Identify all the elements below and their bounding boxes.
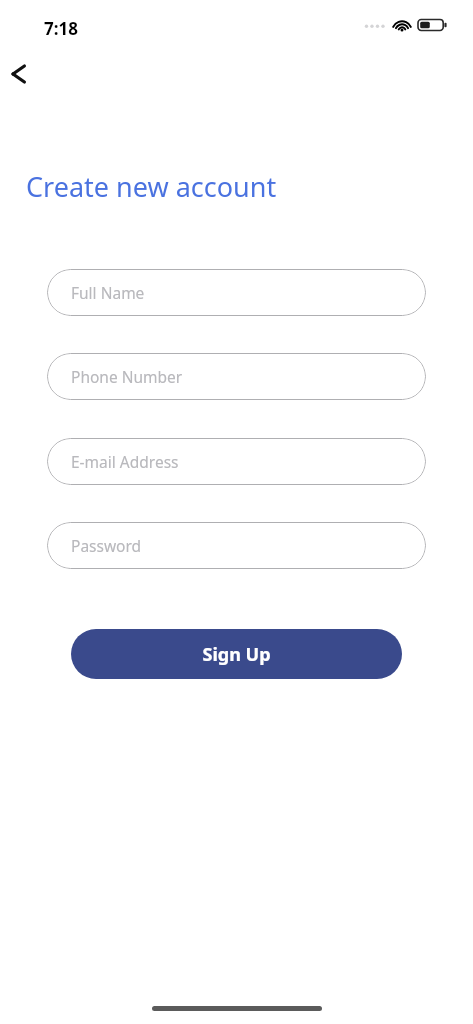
button[interactable]: Password [47,522,426,569]
button[interactable]: Phone Number [47,353,426,400]
staticText: Phone Number [71,366,183,387]
button[interactable]: Back [0,52,44,96]
staticText: Full Name [71,282,145,303]
staticText: Sign Up [202,642,271,667]
staticText: 7:18 [44,17,78,40]
staticText: Create new account [26,168,277,205]
button[interactable]: E-mail Address [47,438,426,485]
button[interactable]: Full Name [47,269,426,316]
staticText: E-mail Address [71,451,179,472]
button[interactable]: Sign Up [71,629,402,679]
staticText: Password [71,535,142,556]
